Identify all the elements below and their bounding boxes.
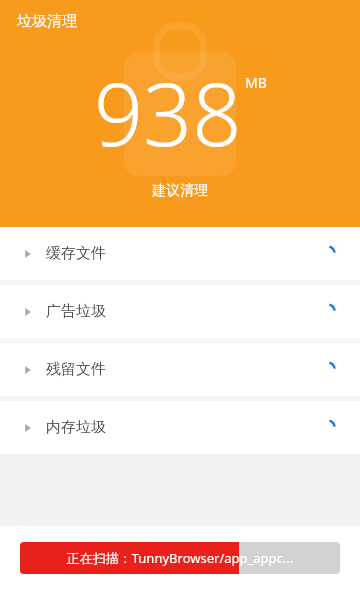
button[interactable]: 正在扫描：TunnyBrowser/app_appc...: [20, 542, 340, 574]
button[interactable]: 缓存文件: [0, 227, 360, 280]
staticText: 广告垃圾: [46, 302, 106, 321]
other: Scanning: [318, 303, 336, 321]
other: Scanning: [318, 361, 336, 379]
staticText: 内存垃圾: [46, 418, 106, 437]
staticText: MB: [245, 73, 267, 92]
button[interactable]: 广告垃圾: [0, 285, 360, 338]
staticText: 缓存文件: [46, 244, 106, 263]
other: Scanning: [318, 419, 336, 437]
staticText: 建议清理: [152, 182, 208, 200]
other: Scanning: [318, 245, 336, 263]
button[interactable]: 残留文件: [0, 343, 360, 396]
button[interactable]: 内存垃圾: [0, 401, 360, 454]
staticText: 残留文件: [46, 360, 106, 379]
staticText: 正在扫描：TunnyBrowser/app_appc...: [30, 549, 330, 567]
staticText: 938: [94, 54, 242, 171]
staticText: 垃圾清理: [17, 12, 77, 31]
